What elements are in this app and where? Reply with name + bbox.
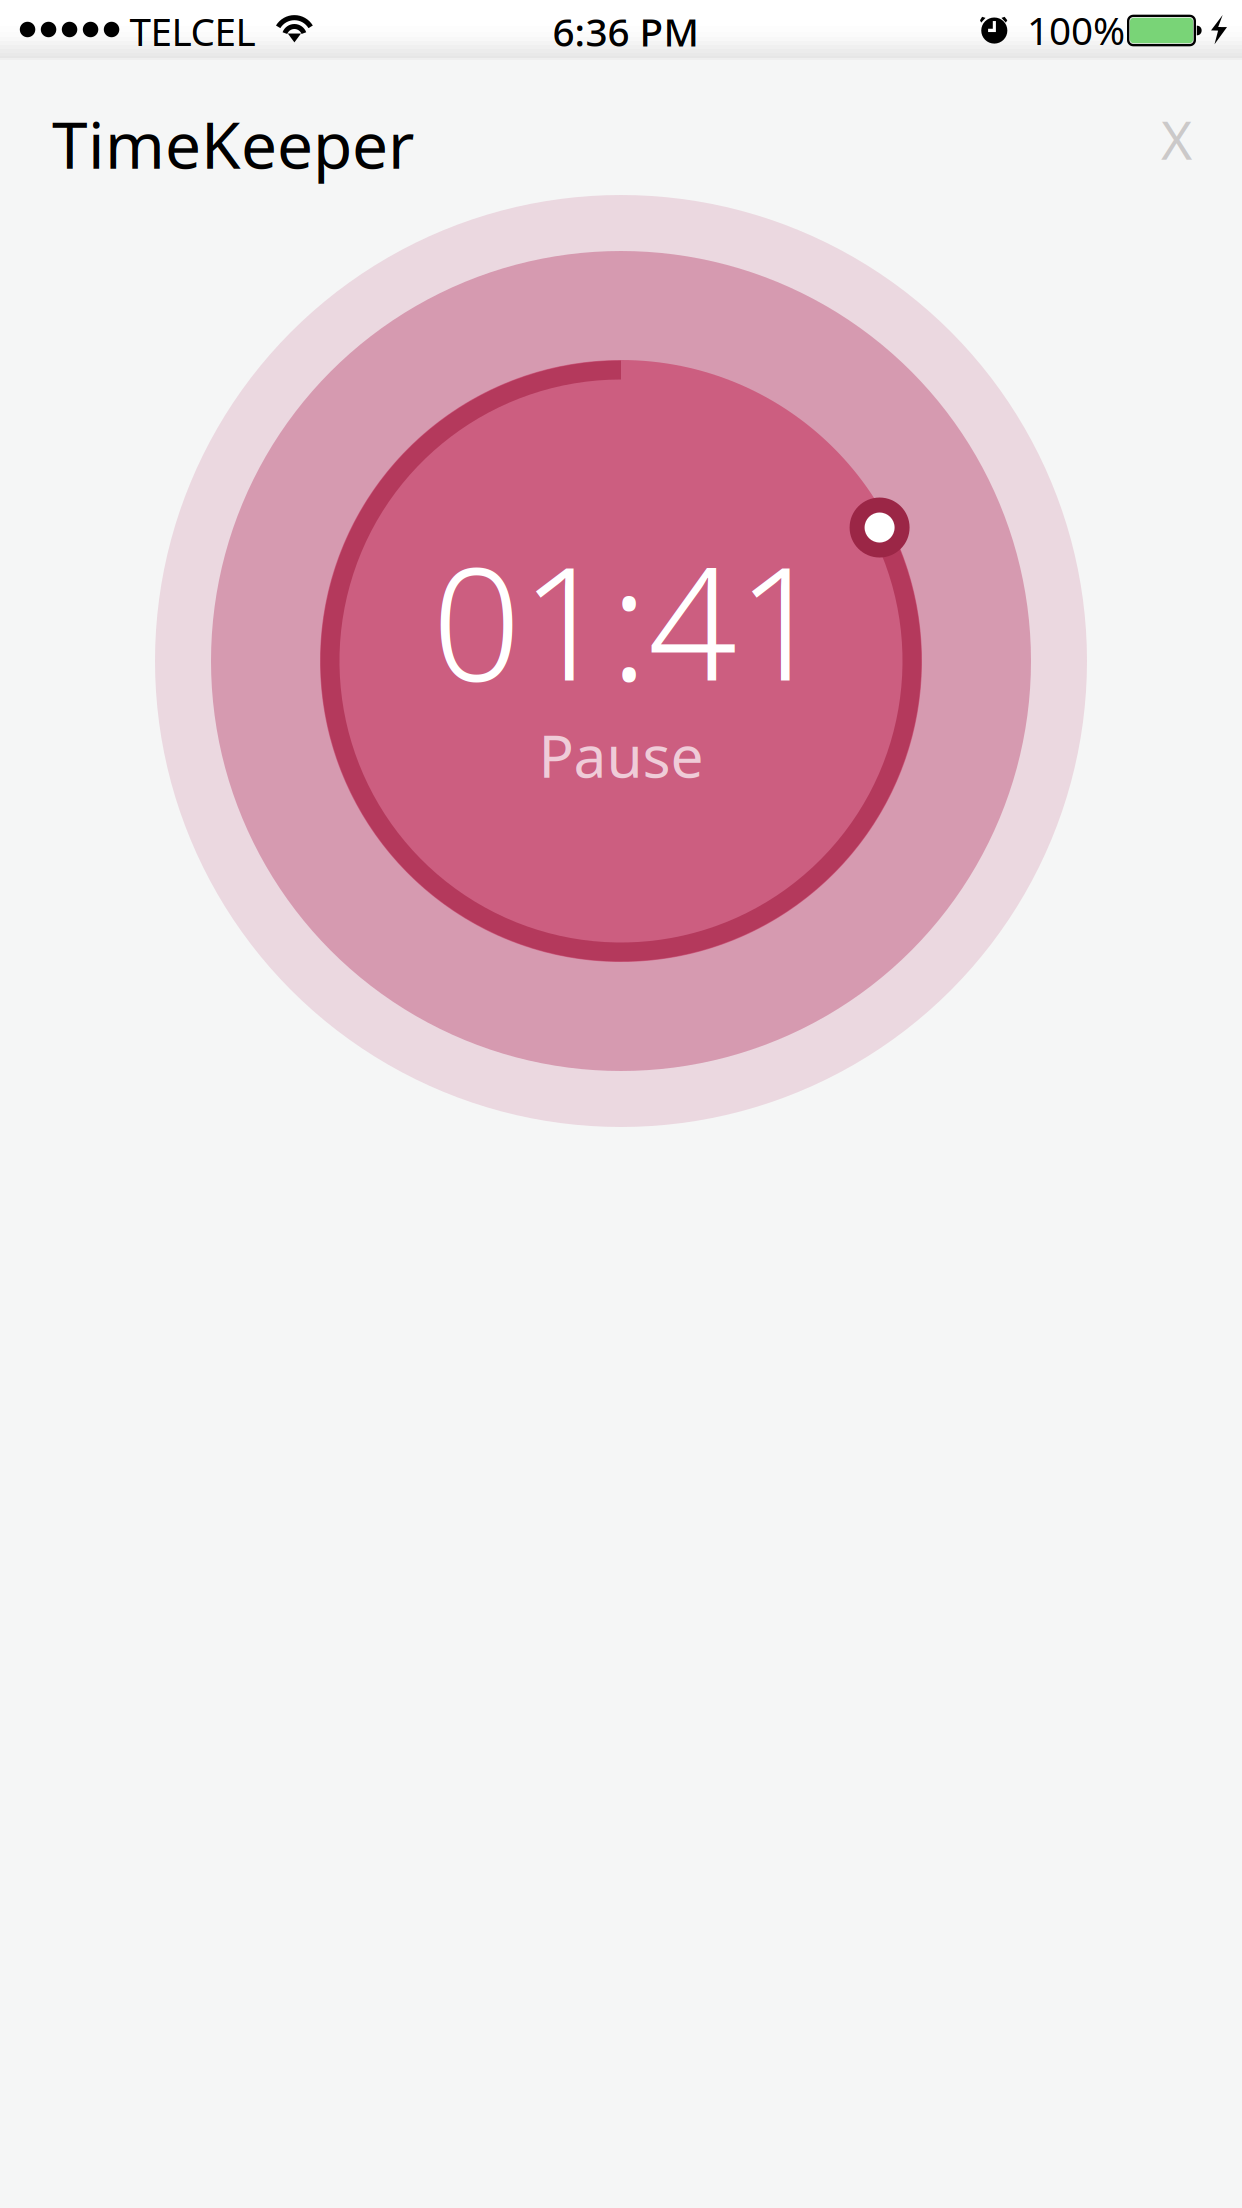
staticText: 01:41 [432,516,826,724]
staticText: Pause [538,716,703,794]
staticText: X [1161,104,1192,174]
staticText: 100% [1027,4,1125,56]
button[interactable]: Close [1121,84,1231,194]
staticText: TimeKeeper [52,101,414,186]
button[interactable]: 01:41 [155,195,1087,1127]
staticText: 6:36 PM [552,6,698,57]
staticText: TELCEL [129,5,255,57]
